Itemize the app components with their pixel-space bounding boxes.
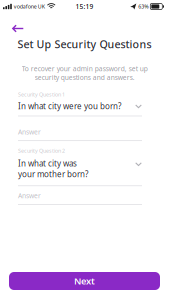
button[interactable]: Answer	[18, 186, 142, 204]
staticText: Security Question 2	[18, 147, 65, 154]
staticText: Next	[74, 275, 95, 287]
staticText: In what city were you born?	[18, 101, 121, 112]
button[interactable]: Back	[0, 13, 169, 37]
button[interactable]: In what city were you born?	[18, 98, 142, 116]
staticText: Answer	[18, 191, 41, 200]
staticText: 15:19	[75, 2, 93, 11]
staticText: 63%	[138, 3, 148, 10]
staticText: To recover your admin password, set up s…	[21, 64, 147, 82]
staticText: Security Question 1	[18, 91, 65, 98]
button[interactable]: Answer	[18, 116, 142, 140]
button[interactable]: Next	[9, 272, 160, 290]
staticText: In what city was your mother born?	[18, 158, 88, 179]
staticText: Set Up Security Questions	[17, 37, 151, 51]
staticText: vodafone UK	[14, 3, 45, 10]
button[interactable]: In what city was your mother born?	[18, 154, 142, 185]
staticText: Answer	[18, 127, 41, 136]
